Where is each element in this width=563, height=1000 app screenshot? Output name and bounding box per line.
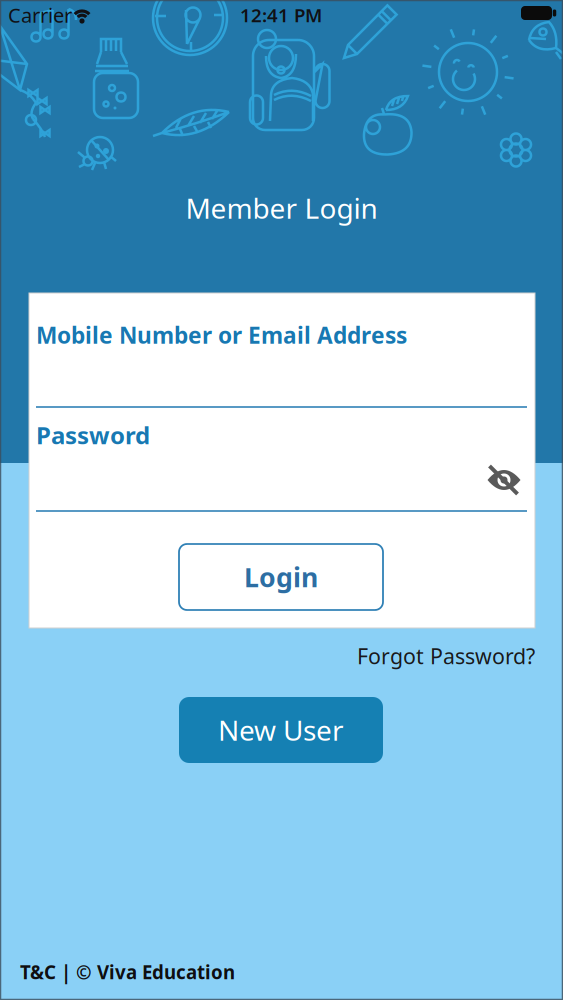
staticText: Login <box>244 559 318 595</box>
button[interactable]: Forgot Password? <box>0 642 563 670</box>
staticText: Carrier <box>8 2 72 28</box>
staticText: Forgot Password? <box>357 642 535 670</box>
staticText: 12:41 PM <box>240 3 322 27</box>
staticText: Member Login <box>185 189 377 227</box>
button[interactable]: Password <box>0 419 563 451</box>
staticText: Mobile Number or Email Address <box>36 320 407 350</box>
staticText: New User <box>218 711 344 749</box>
button[interactable]: Mobile Number or Email Address <box>0 320 563 350</box>
staticText: T&C | © Viva Education <box>20 960 235 984</box>
staticText: Password <box>36 419 150 451</box>
button[interactable]: New User <box>179 697 383 763</box>
button[interactable]: T&C | © Viva Education <box>0 960 563 984</box>
button[interactable]: Login <box>179 544 383 610</box>
button[interactable] <box>486 466 521 494</box>
